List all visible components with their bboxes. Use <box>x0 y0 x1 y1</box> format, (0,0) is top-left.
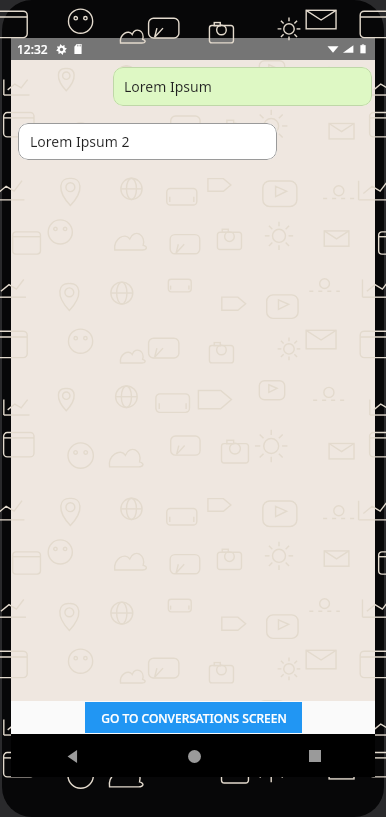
button[interactable]: Lorem Ipsum 2 <box>18 123 277 160</box>
button[interactable]: GO TO CONVERSATIONS SCREEN <box>85 702 302 733</box>
staticText: GO TO CONVERSATIONS SCREEN <box>101 710 287 726</box>
button[interactable]: Lorem Ipsum <box>113 67 372 106</box>
button[interactable]: Recent apps <box>298 739 332 773</box>
staticText: 12:32 <box>17 41 48 57</box>
staticText: Lorem Ipsum <box>124 77 212 96</box>
staticText: Lorem Ipsum 2 <box>30 132 130 151</box>
button[interactable]: Back <box>55 739 89 773</box>
button[interactable]: Home <box>177 739 211 773</box>
